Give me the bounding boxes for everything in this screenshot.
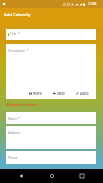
button[interactable]: Title <box>6 29 96 40</box>
staticText: PHOTO <box>33 92 42 95</box>
staticText: * <box>17 117 20 121</box>
staticText: Affected Farmer : <box>6 102 40 107</box>
button[interactable]: VIDEO <box>53 91 65 96</box>
button[interactable]: Description <box>6 44 96 87</box>
button[interactable]: Description <box>6 44 96 99</box>
button[interactable]: Home <box>42 169 62 183</box>
staticText: Title <box>10 32 17 36</box>
staticText: AUDIO <box>80 92 89 95</box>
button[interactable]: Recents <box>72 169 92 183</box>
button[interactable]: Phone <box>6 151 96 164</box>
button[interactable]: AUDIO <box>76 91 89 96</box>
button[interactable]: Name <box>6 112 96 124</box>
button[interactable]: Back <box>11 169 31 183</box>
staticText: * <box>17 32 20 36</box>
staticText: Phone <box>8 156 18 160</box>
staticText: * <box>26 49 29 53</box>
button[interactable]: PHOTO <box>29 91 42 96</box>
staticText: VIDEO <box>57 92 65 95</box>
staticText: Add Calamity <box>4 12 31 18</box>
staticText: Address <box>8 131 21 135</box>
staticText: Description <box>8 49 26 53</box>
staticText: Name <box>8 117 17 121</box>
button[interactable]: Address <box>6 126 96 149</box>
staticText: 7:36 <box>88 1 97 7</box>
